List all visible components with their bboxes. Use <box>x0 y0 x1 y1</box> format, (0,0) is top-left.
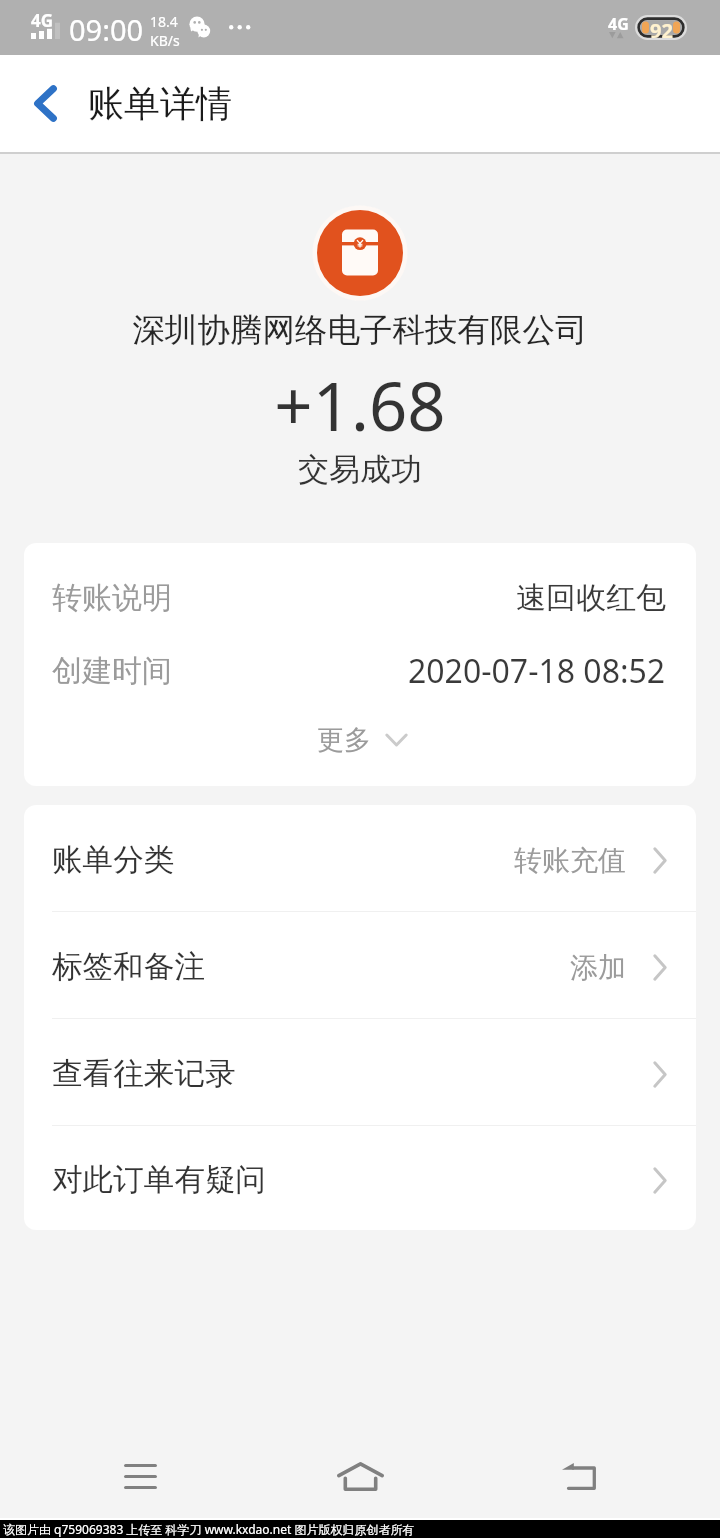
staticText: 该图片由 q759069383 上传至 科学刀 www.kxdao.net 图片… <box>3 1521 415 1537</box>
button[interactable]: Back <box>543 1434 615 1518</box>
button[interactable]: Recent apps <box>104 1434 176 1518</box>
staticText: 转账说明 <box>52 579 172 617</box>
staticText: 09:00 <box>69 10 144 49</box>
staticText: 创建时间 <box>52 652 172 690</box>
staticText: 标签和备注 <box>52 948 205 987</box>
staticText: KB/s <box>150 31 180 50</box>
staticText: 对此订单有疑问 <box>52 1161 267 1200</box>
button[interactable]: 对此订单有疑问 <box>24 1126 696 1230</box>
staticText: 4G <box>31 9 54 32</box>
staticText: 转账充值 <box>514 843 626 878</box>
staticText: 查看往来记录 <box>52 1055 236 1094</box>
button[interactable]: 查看往来记录 <box>24 1019 696 1125</box>
button[interactable]: Home <box>320 1434 400 1518</box>
staticText: 速回收红包 <box>516 579 666 617</box>
staticText: 更多 <box>317 723 371 757</box>
button[interactable]: Back <box>0 64 88 143</box>
staticText: 4G <box>608 13 629 35</box>
button[interactable]: 更多 <box>24 705 696 786</box>
staticText: 账单分类 <box>52 841 175 880</box>
staticText: 92 <box>650 17 673 38</box>
staticText: +1.68 <box>0 359 720 450</box>
button[interactable]: 账单分类 <box>24 805 696 911</box>
staticText: 深圳协腾网络电子科技有限公司 <box>0 310 720 351</box>
staticText: 交易成功 <box>0 450 720 489</box>
staticText: 18.4 <box>150 12 178 31</box>
button[interactable]: 标签和备注 <box>24 912 696 1018</box>
staticText: 2020-07-18 08:52 <box>408 649 666 693</box>
staticText: 账单详情 <box>88 81 232 126</box>
staticText: 添加 <box>570 950 626 985</box>
